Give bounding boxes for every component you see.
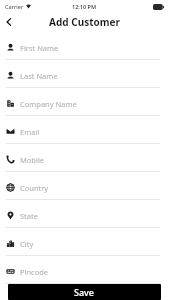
button[interactable]: Back bbox=[0, 13, 18, 31]
staticText: 12:10 PM bbox=[72, 3, 97, 10]
button[interactable]: Country bbox=[0, 179, 169, 200]
staticText: Pincode bbox=[20, 267, 49, 277]
staticText: Carrier bbox=[5, 3, 24, 10]
staticText: City bbox=[20, 239, 34, 249]
staticText: First Name bbox=[20, 43, 59, 53]
button[interactable]: Save bbox=[8, 284, 161, 300]
button[interactable]: State bbox=[0, 207, 169, 228]
staticText: Last Name bbox=[20, 71, 58, 81]
staticText: Mobile bbox=[20, 155, 45, 165]
button[interactable]: Pincode bbox=[0, 263, 169, 284]
button[interactable]: Last Name bbox=[0, 67, 169, 88]
button[interactable]: Company Name bbox=[0, 95, 169, 116]
staticText: Save bbox=[74, 286, 95, 298]
staticText: State bbox=[20, 211, 38, 221]
button[interactable]: City bbox=[0, 235, 169, 256]
button[interactable]: First Name bbox=[0, 39, 169, 60]
staticText: Email bbox=[20, 127, 40, 137]
button[interactable]: Mobile bbox=[0, 151, 169, 172]
staticText: Add Customer bbox=[49, 15, 120, 29]
staticText: Country bbox=[20, 183, 49, 193]
button[interactable]: Email bbox=[0, 123, 169, 144]
staticText: Company Name bbox=[20, 99, 77, 109]
